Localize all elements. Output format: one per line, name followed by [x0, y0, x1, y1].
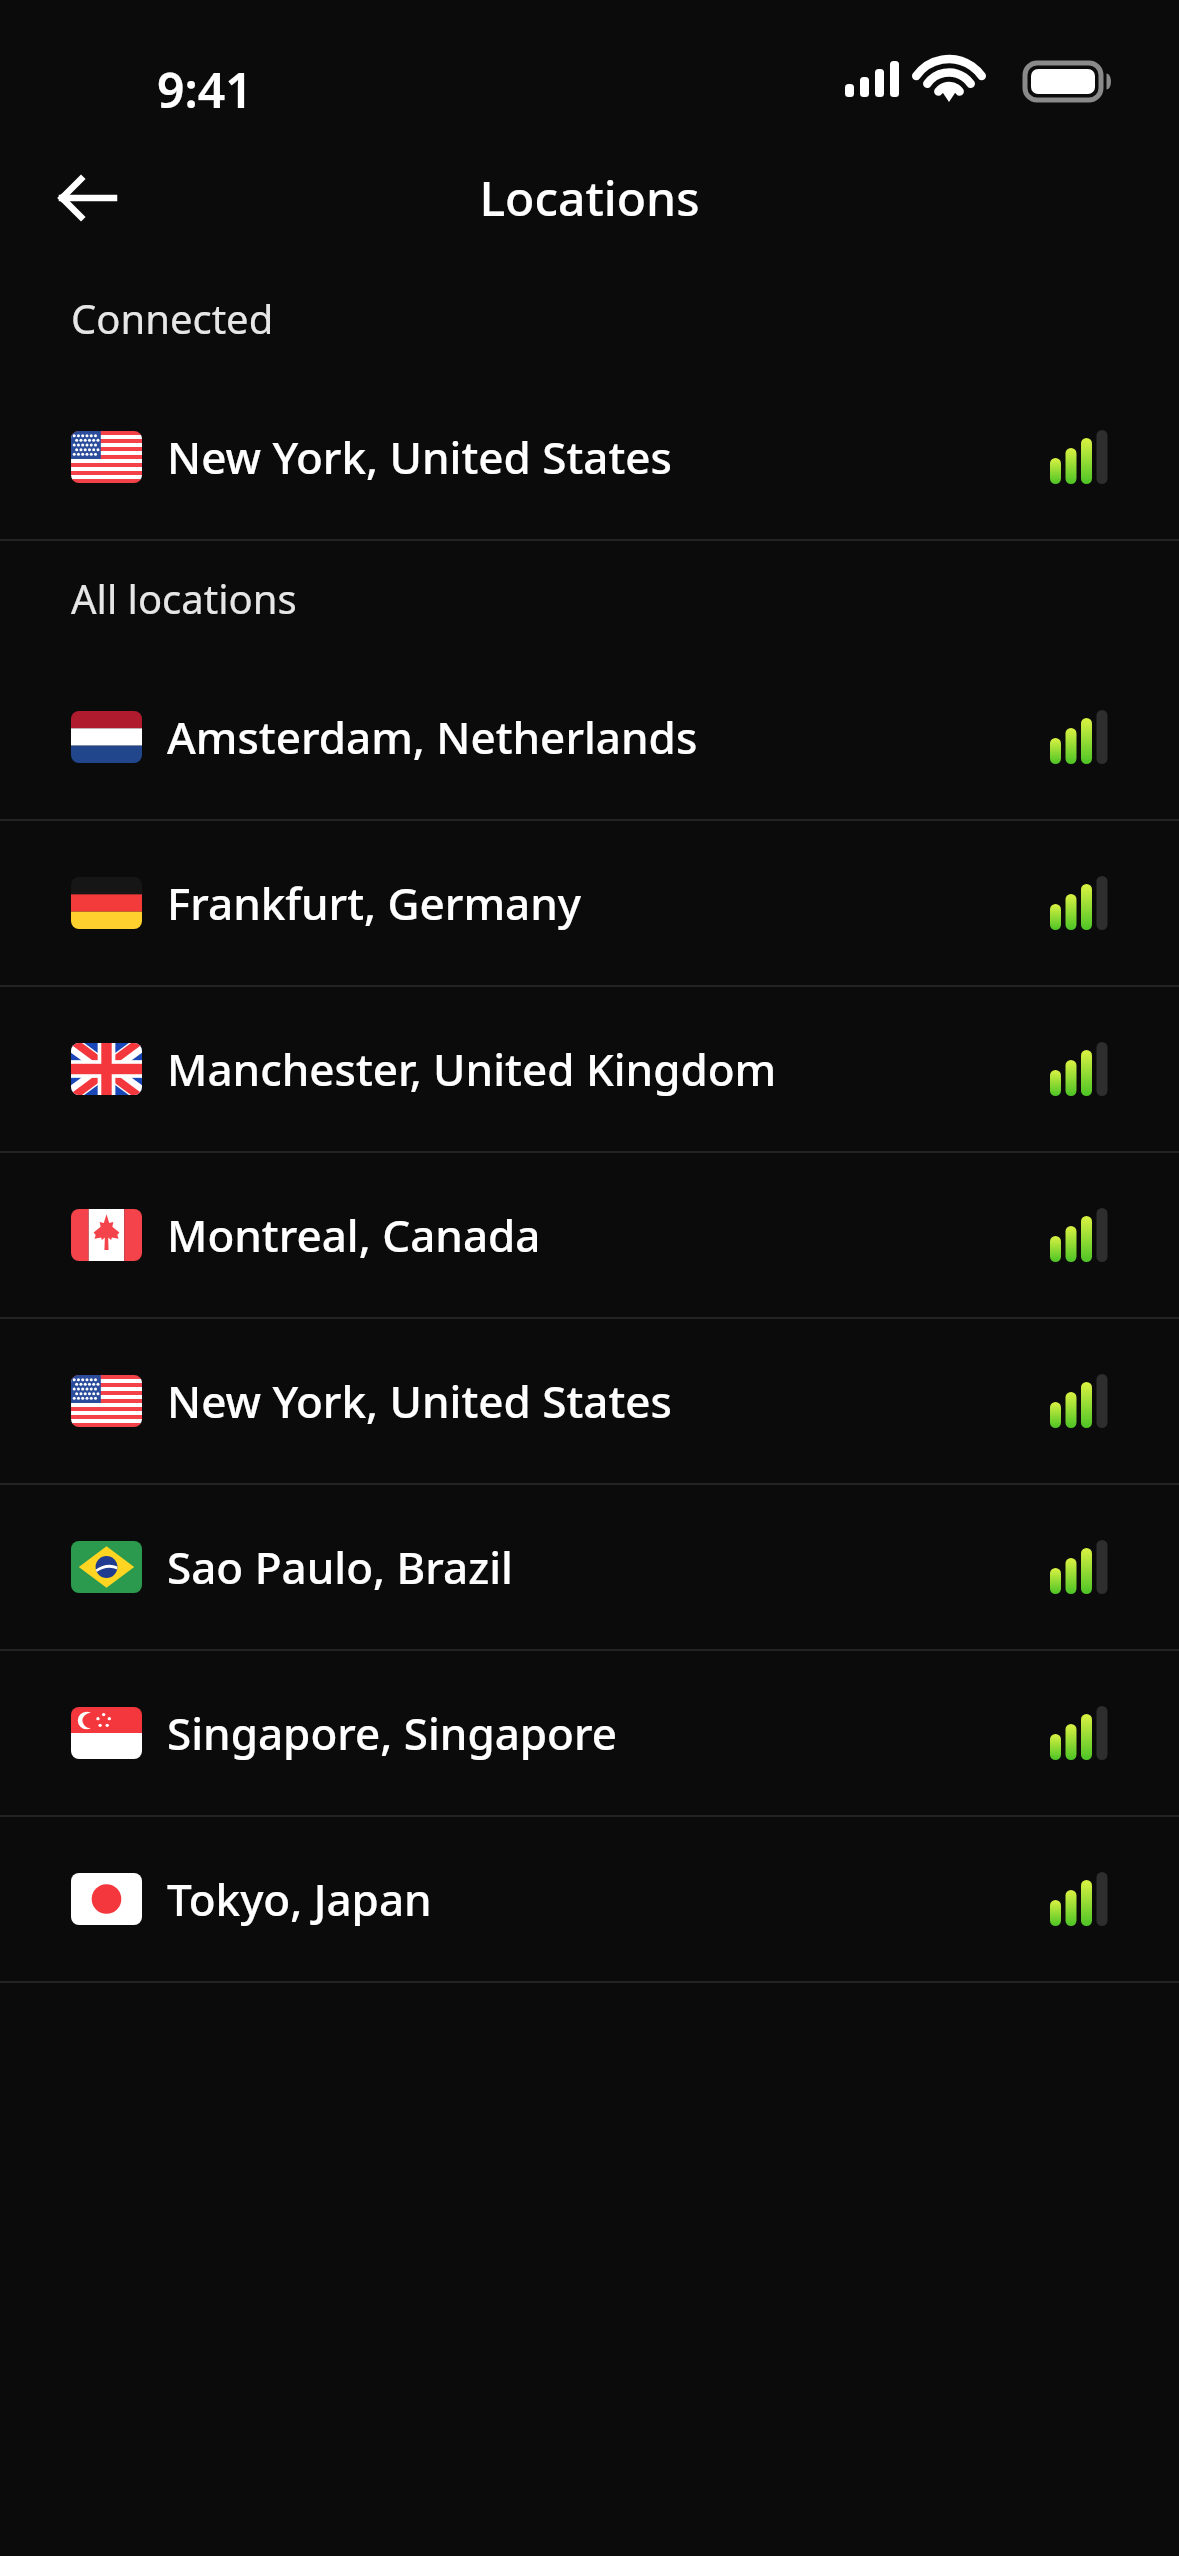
staticText: Sao Paulo, Brazil: [167, 1537, 1050, 1597]
staticText: Amsterdam, Netherlands: [167, 707, 1050, 767]
button[interactable]: Back: [48, 158, 128, 238]
staticText: Connected: [71, 291, 274, 345]
staticText: Montreal, Canada: [167, 1205, 1050, 1265]
staticText: 9:41: [157, 57, 253, 122]
staticText: Frankfurt, Germany: [167, 873, 1050, 933]
button[interactable]: Frankfurt, Germany: [0, 821, 1179, 985]
button[interactable]: Manchester, United Kingdom: [0, 987, 1179, 1151]
button[interactable]: Tokyo, Japan: [0, 1817, 1179, 1981]
staticText: New York, United States: [167, 1371, 1050, 1431]
button[interactable]: Amsterdam, Netherlands: [0, 655, 1179, 819]
button[interactable]: Montreal, Canada: [0, 1153, 1179, 1317]
staticText: Locations: [0, 165, 1179, 230]
staticText: Singapore, Singapore: [167, 1703, 1050, 1763]
button[interactable]: Singapore, Singapore: [0, 1651, 1179, 1815]
button[interactable]: New York, United States: [0, 1319, 1179, 1483]
staticText: New York, United States: [167, 427, 1050, 487]
button[interactable]: Sao Paulo, Brazil: [0, 1485, 1179, 1649]
button[interactable]: New York, United States: [0, 375, 1179, 539]
staticText: Manchester, United Kingdom: [167, 1039, 1050, 1099]
staticText: All locations: [71, 571, 297, 625]
staticText: Tokyo, Japan: [167, 1869, 1050, 1929]
